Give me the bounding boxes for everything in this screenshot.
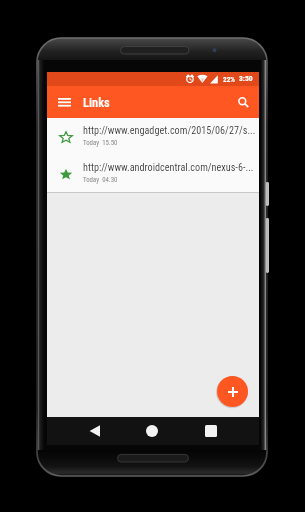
staticText: Today 04.30 [83,176,118,184]
staticText: 3:50 [239,74,253,83]
button[interactable]: Home [139,418,165,444]
staticText: 22% [223,75,235,83]
staticText: Today 15.50 [83,139,118,147]
button[interactable]: http://www.engadget.com/2015/06/27/s... [47,118,259,155]
staticText: Links [83,95,110,110]
staticText: http://www.androidcentral.com/nexus-6-..… [83,162,254,174]
button[interactable]: Back [81,418,107,444]
button[interactable]: Search [232,91,254,113]
staticText: http://www.engadget.com/2015/06/27/s... [83,125,256,137]
button[interactable]: http://www.androidcentral.com/nexus-6-..… [47,155,259,192]
button[interactable]: Recent apps [198,418,224,444]
button[interactable]: Open navigation drawer [53,91,75,113]
button[interactable]: Add link [217,376,248,407]
